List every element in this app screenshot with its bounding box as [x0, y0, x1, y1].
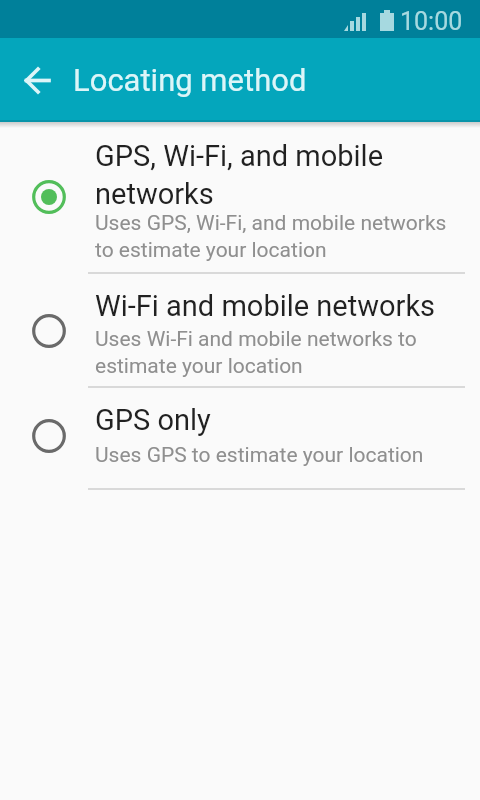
staticText: 10:00	[400, 7, 463, 36]
staticText: Locating method	[73, 62, 307, 98]
button[interactable]	[16, 59, 58, 101]
staticText: Uses GPS, Wi-Fi, and mobile networks to …	[95, 211, 447, 263]
button[interactable]: GPS, Wi-Fi, and mobile networks	[0, 122, 480, 272]
staticText: Uses GPS to estimate your location	[95, 443, 424, 468]
staticText: Uses Wi-Fi and mobile networks to estima…	[95, 327, 417, 379]
staticText: Wi-Fi and mobile networks	[95, 289, 436, 323]
button[interactable]: GPS only	[0, 388, 480, 488]
button[interactable]: Wi-Fi and mobile networks	[0, 274, 480, 386]
staticText: GPS, Wi-Fi, and mobile networks	[95, 139, 384, 211]
staticText: GPS only	[95, 403, 211, 437]
